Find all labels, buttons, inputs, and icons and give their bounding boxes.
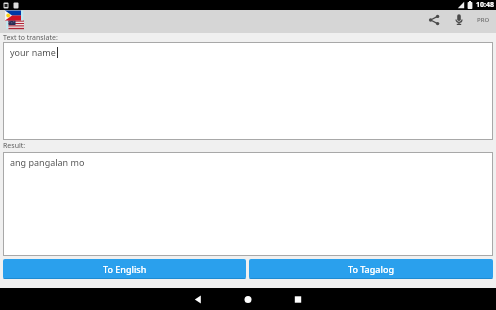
button[interactable] (428, 14, 440, 26)
staticText: ang pangalan mo (10, 156, 85, 168)
staticText: your name (10, 46, 56, 58)
button[interactable]: PRO (477, 16, 490, 24)
button[interactable]: ang pangalan mo (3, 152, 493, 256)
button[interactable] (294, 295, 302, 304)
button[interactable]: To Tagalog (249, 259, 493, 279)
button[interactable] (453, 13, 465, 26)
staticText: Text to translate: (3, 33, 58, 42)
staticText: Result: (3, 141, 26, 151)
button[interactable]: To English (3, 259, 246, 279)
staticText: 10:48 (476, 0, 494, 10)
staticText: To Tagalog (348, 263, 394, 275)
button[interactable] (194, 295, 202, 304)
button[interactable] (244, 295, 252, 304)
button[interactable]: your name (3, 42, 493, 140)
staticText: To English (103, 263, 147, 275)
staticText: PRO (477, 16, 490, 24)
